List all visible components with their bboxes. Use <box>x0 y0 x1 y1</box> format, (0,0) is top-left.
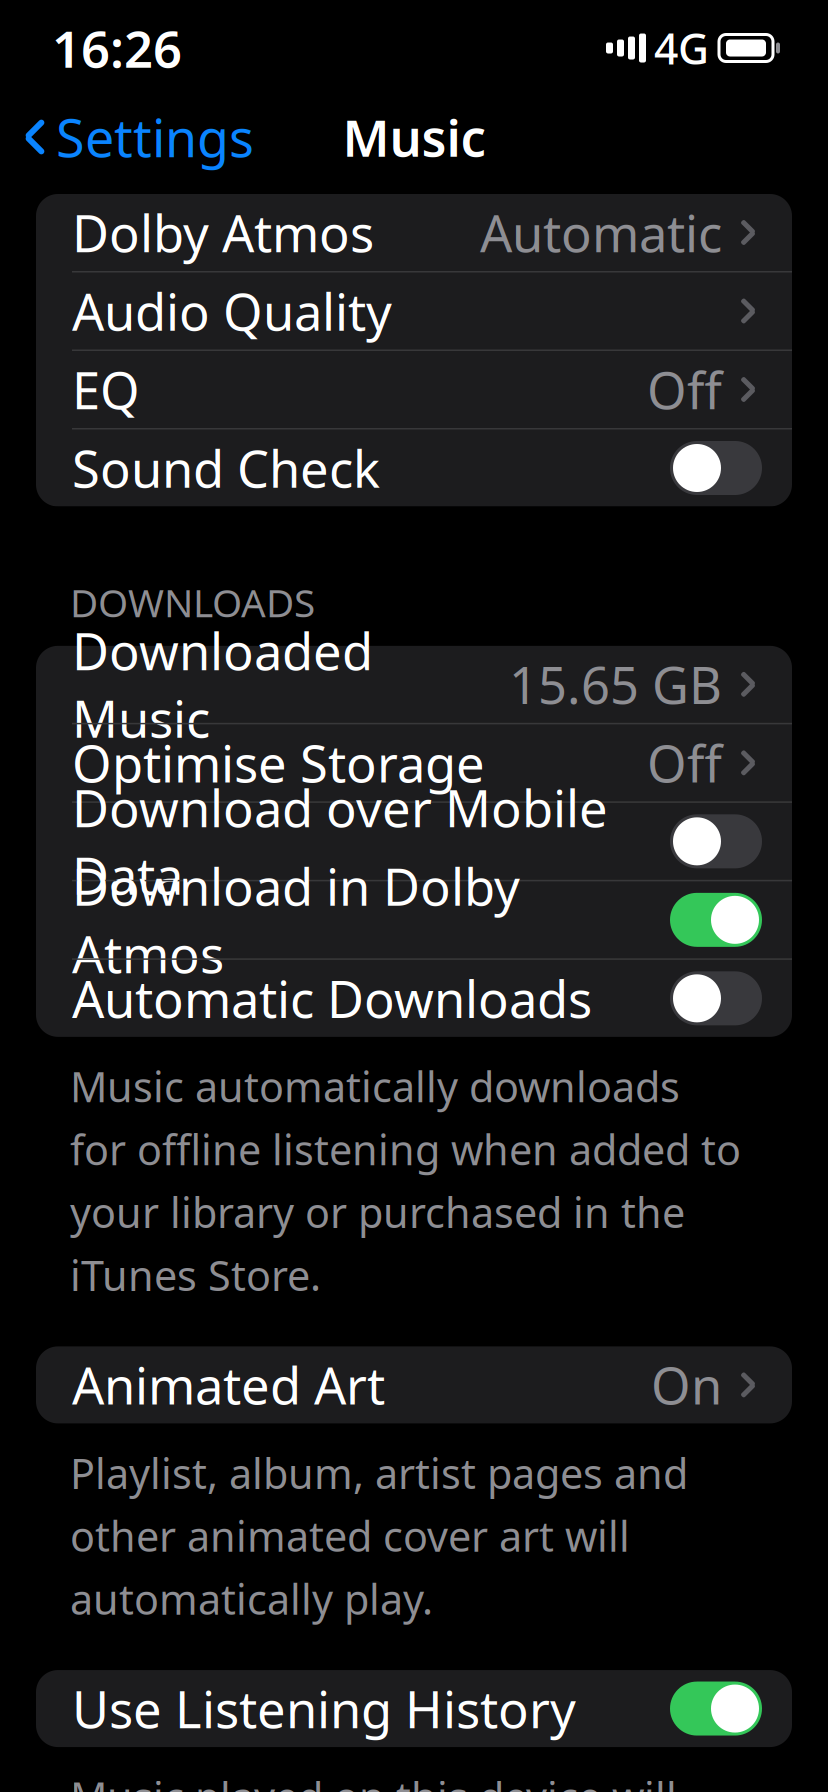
button[interactable]: Dolby Atmos <box>36 194 792 271</box>
staticText: Settings <box>56 102 254 172</box>
staticText: 4G <box>654 20 709 76</box>
button[interactable]: Downloaded Music <box>36 646 792 723</box>
staticText: Downloaded Music <box>72 617 373 752</box>
staticText: Automatic Downloads <box>72 965 592 1032</box>
button[interactable]: Automatic Downloads <box>36 960 792 1037</box>
staticText: Download over Mobile Data <box>72 774 608 909</box>
staticText: Audio Quality <box>72 277 392 345</box>
button[interactable]: Animated Art <box>36 1346 792 1423</box>
staticText: Download in Dolby Atmos <box>72 853 520 987</box>
staticText: Sound Check <box>72 434 380 502</box>
staticText: Dolby Atmos <box>72 199 374 266</box>
button[interactable]: Download in Dolby Atmos <box>36 881 792 958</box>
staticText: Animated Art <box>72 1351 385 1419</box>
staticText: 15.65 GB <box>509 651 722 718</box>
staticText: Off <box>647 729 722 796</box>
button[interactable]: Use Listening History <box>36 1670 792 1747</box>
staticText: Playlist, album, artist pages and other … <box>70 1445 688 1626</box>
staticText: Optimise Storage <box>72 729 485 796</box>
button[interactable]: Settings <box>0 101 268 173</box>
staticText: Music played on this device will appear … <box>70 1769 711 1792</box>
button[interactable]: EQ <box>36 351 792 428</box>
staticText: Automatic <box>480 199 722 266</box>
staticText: Music automatically downloads for offlin… <box>70 1059 741 1302</box>
staticText: DOWNLOADS <box>70 576 315 628</box>
button[interactable]: Sound Check <box>36 429 792 506</box>
button[interactable]: Audio Quality <box>36 272 792 349</box>
staticText: 16:26 <box>52 14 182 82</box>
button[interactable]: Optimise Storage <box>36 724 792 801</box>
staticText: Use Listening History <box>72 1675 576 1742</box>
staticText: Music <box>342 103 485 171</box>
staticText: On <box>651 1351 722 1419</box>
staticText: EQ <box>72 356 140 423</box>
button[interactable]: Download over Mobile Data <box>36 803 792 880</box>
staticText: Off <box>647 356 722 423</box>
